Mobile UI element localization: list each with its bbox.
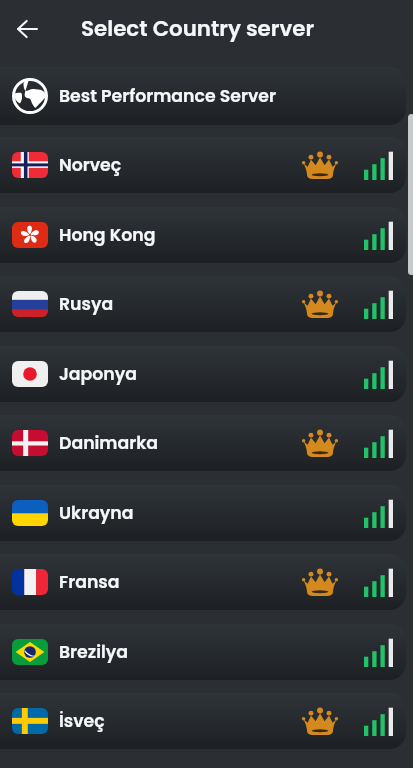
staticText: Danimarka — [59, 431, 159, 455]
staticText: İsveç — [59, 709, 105, 733]
staticText: Select Country server — [81, 14, 315, 44]
button[interactable]: Brezilya — [0, 624, 406, 680]
staticText: Brezilya — [59, 640, 128, 664]
button[interactable]: Best Performance Server — [0, 67, 406, 125]
button[interactable]: Fransa — [0, 554, 406, 610]
staticText: Ukrayna — [59, 501, 134, 525]
staticText: Norveç — [59, 153, 122, 177]
button[interactable]: Norveç — [0, 137, 406, 193]
button[interactable]: Ukrayna — [0, 485, 406, 541]
button[interactable]: İsveç — [0, 693, 406, 749]
staticText: Japonya — [59, 362, 137, 386]
staticText: Best Performance Server — [59, 84, 276, 108]
button[interactable]: Back — [0, 0, 54, 58]
staticText: Hong Kong — [59, 223, 156, 247]
button[interactable]: Rusya — [0, 276, 406, 332]
staticText: Fransa — [59, 570, 120, 594]
staticText: Rusya — [59, 292, 114, 316]
button[interactable]: Danimarka — [0, 415, 406, 471]
button[interactable]: Japonya — [0, 346, 406, 402]
button[interactable]: Hong Kong — [0, 207, 406, 263]
